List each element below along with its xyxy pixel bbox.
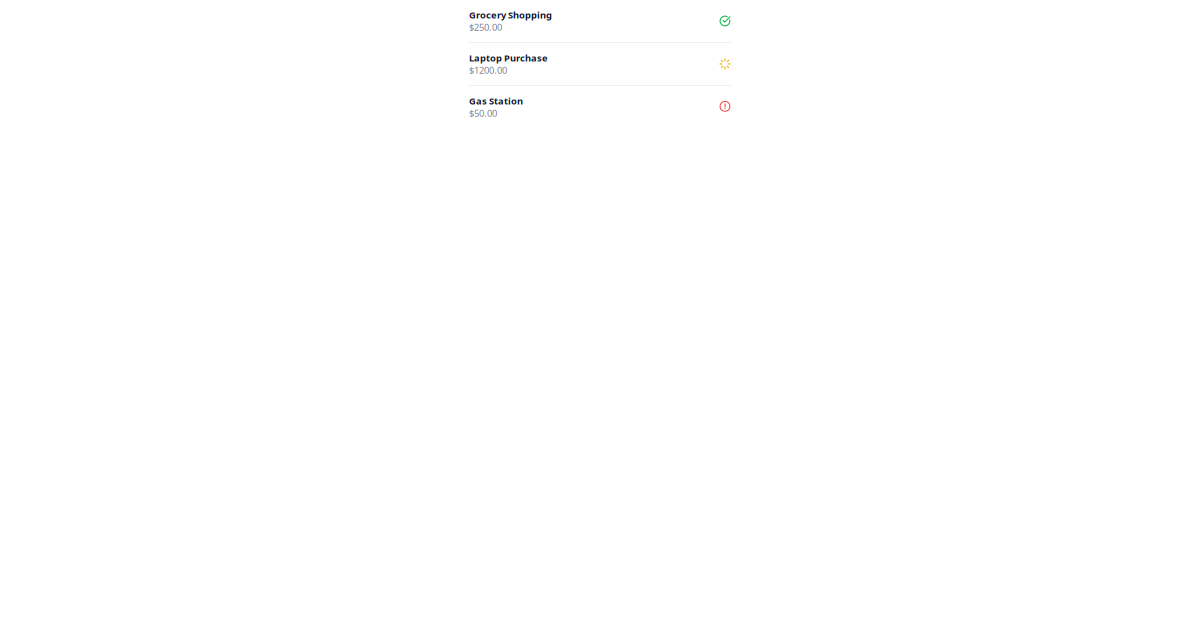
button[interactable]: Laptop Purchase [469, 43, 731, 85]
staticText: $250.00 [469, 21, 502, 33]
button[interactable]: Grocery Shopping [469, 0, 731, 42]
staticText: Grocery Shopping [469, 9, 552, 21]
staticText: Gas Station [469, 95, 523, 107]
staticText: $1200.00 [469, 64, 507, 76]
staticText: $50.00 [469, 107, 497, 119]
button[interactable]: Gas Station [469, 86, 731, 128]
staticText: Laptop Purchase [469, 52, 548, 64]
